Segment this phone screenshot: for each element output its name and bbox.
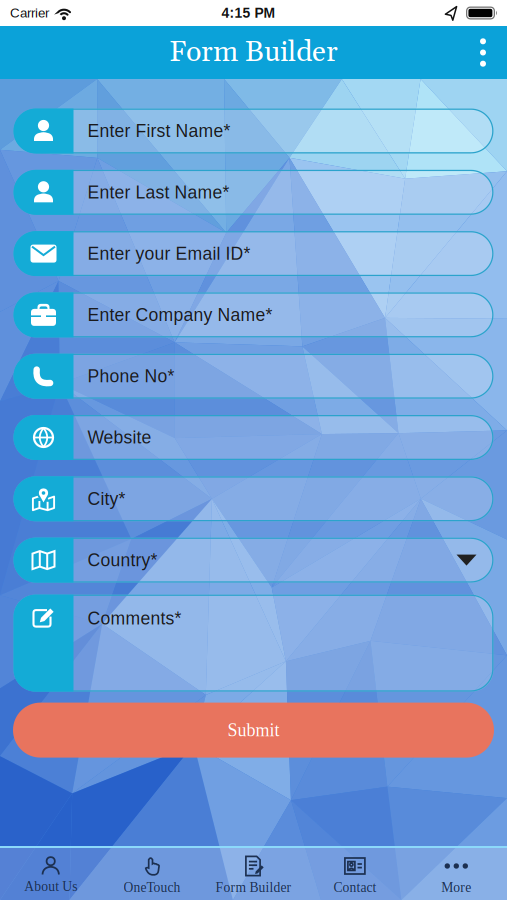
button[interactable]: Phone No* [13, 354, 493, 399]
button[interactable]: Enter Last Name* [13, 170, 493, 215]
staticText: 4:15 PM [221, 5, 275, 21]
staticText: About Us [24, 879, 77, 894]
button[interactable]: More options [463, 26, 503, 79]
staticText: Form Builder [215, 880, 291, 895]
button[interactable]: Contact [304, 846, 406, 900]
staticText: Phone No* [87, 366, 174, 386]
staticText: City* [87, 489, 125, 509]
staticText: Enter First Name* [87, 121, 230, 141]
button[interactable]: Enter Company Name* [13, 292, 493, 337]
staticText: Form Builder [169, 34, 338, 71]
staticText: Enter your Email ID* [87, 244, 250, 263]
button[interactable]: Form Builder [203, 846, 304, 900]
staticText: Comments* [87, 609, 181, 628]
button[interactable]: OneTouch [101, 846, 203, 900]
staticText: Contact [333, 880, 376, 895]
staticText: Enter Last Name* [87, 182, 229, 202]
staticText: Website [87, 428, 151, 447]
staticText: Enter Company Name* [87, 305, 272, 325]
button[interactable]: More [406, 846, 507, 900]
button[interactable]: Submit [13, 703, 494, 758]
staticText: Carrier [10, 6, 49, 20]
button[interactable]: Enter First Name* [13, 108, 493, 153]
button[interactable]: Country* [13, 538, 493, 583]
staticText: More [441, 880, 471, 895]
staticText: Submit [227, 720, 279, 740]
button[interactable]: Comments* [13, 595, 493, 692]
button[interactable]: City* [13, 476, 493, 521]
button[interactable]: Enter your Email ID* [13, 231, 493, 276]
button[interactable]: Website [13, 415, 493, 460]
staticText: OneTouch [124, 880, 181, 895]
staticText: Country* [87, 550, 157, 570]
button[interactable]: About Us [0, 846, 101, 900]
